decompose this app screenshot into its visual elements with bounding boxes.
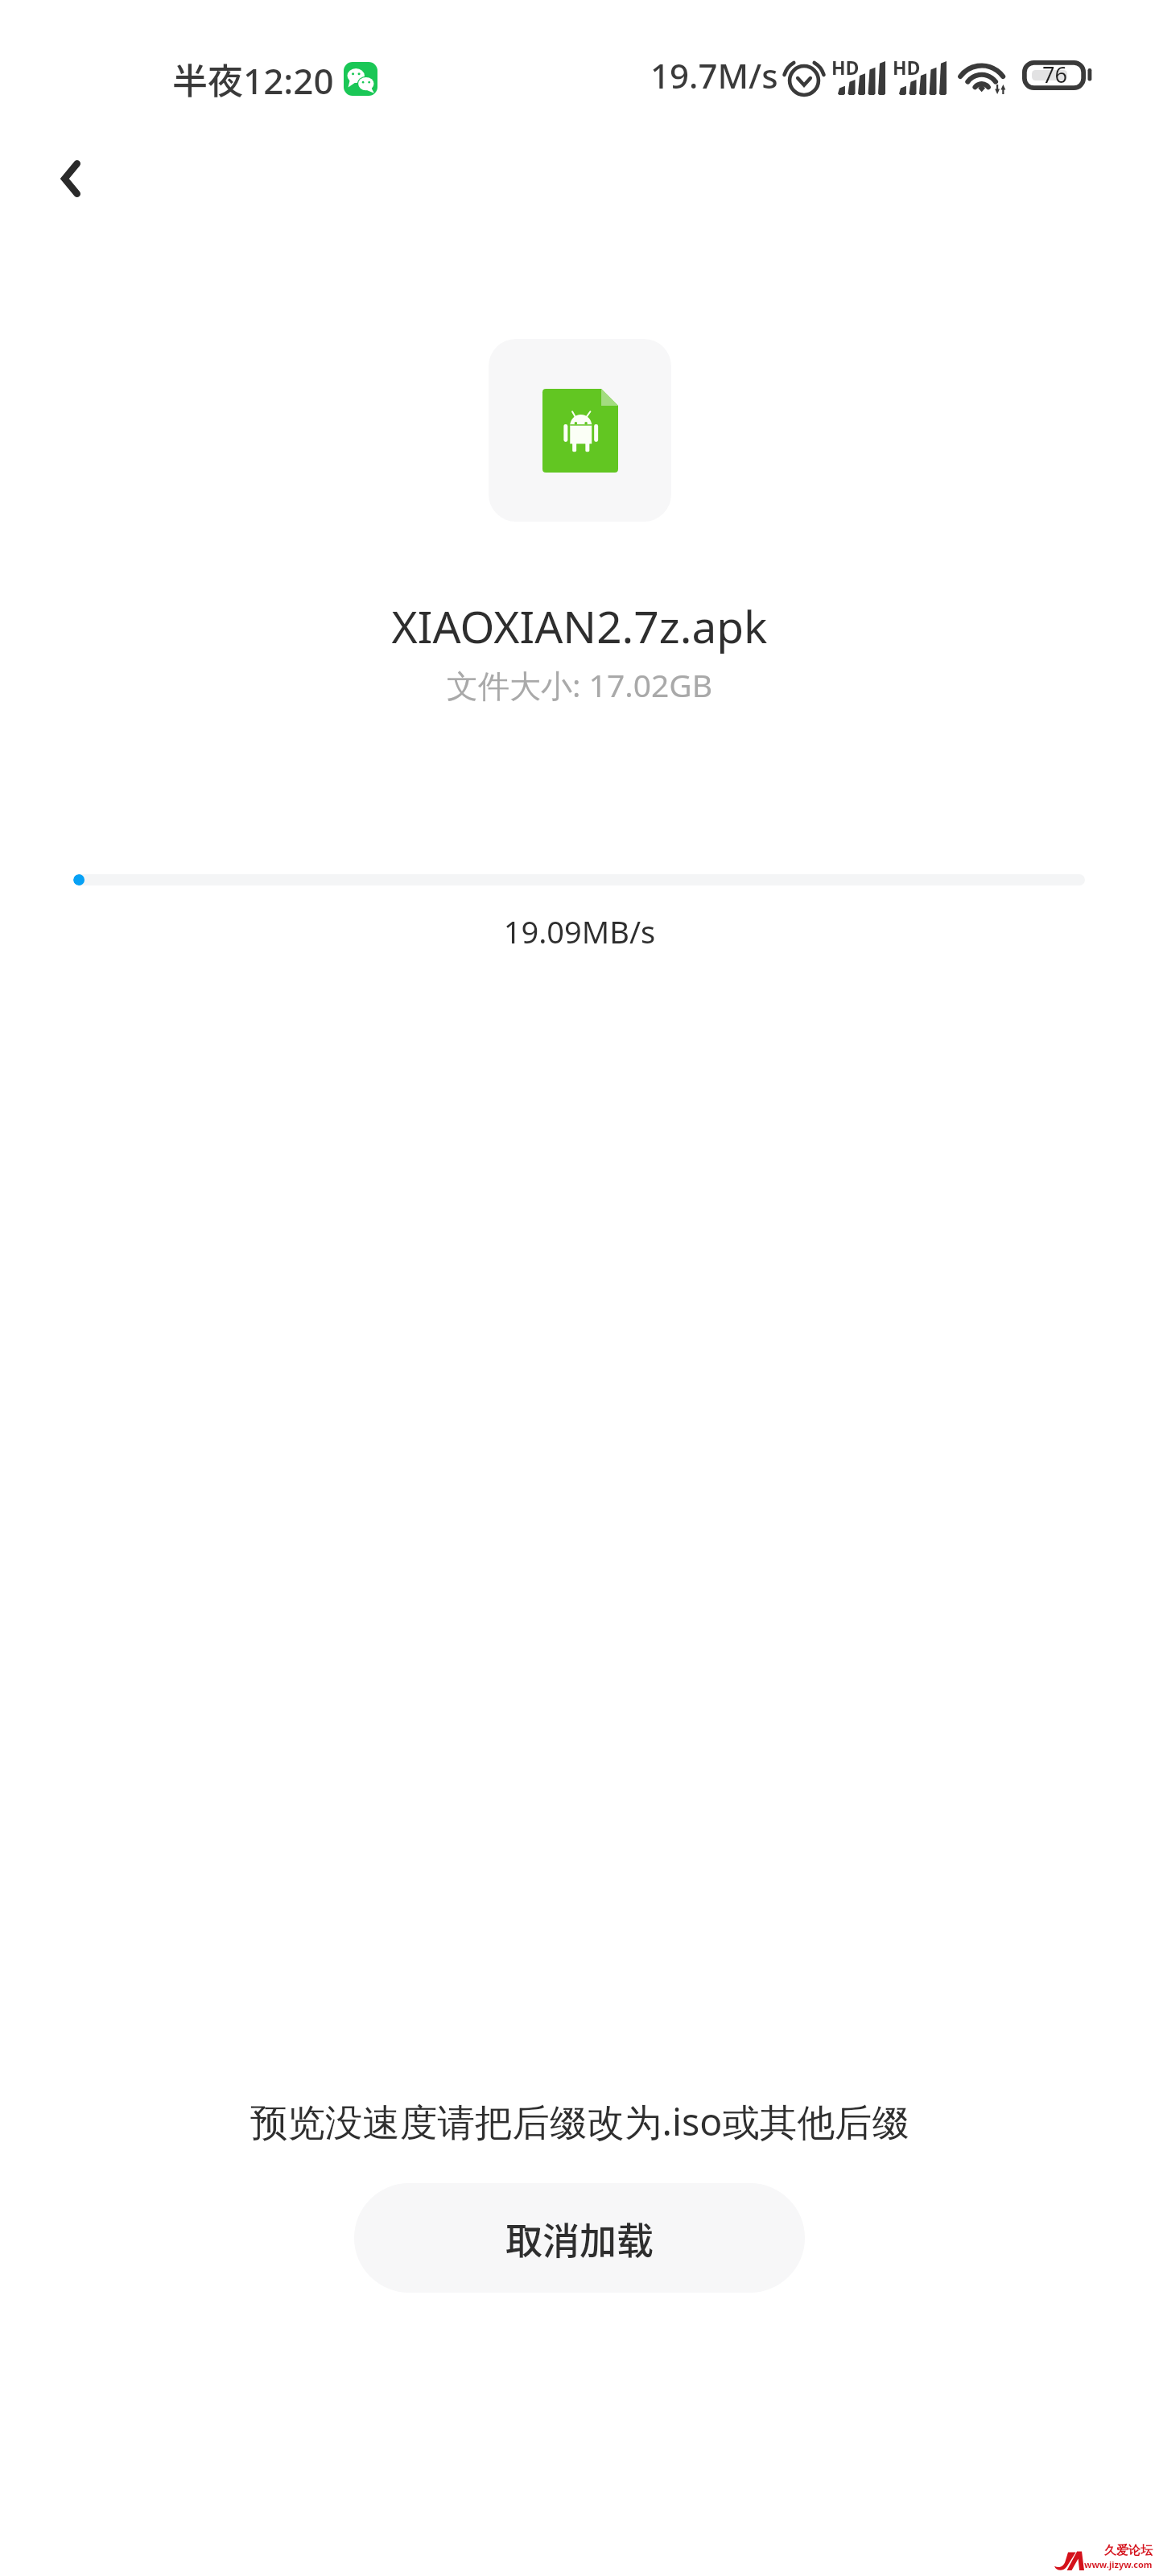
- staticText: 19.7M/s: [650, 52, 778, 98]
- staticText: 19.09MB/s: [0, 910, 1159, 952]
- button[interactable]: 取消加载: [354, 2183, 805, 2293]
- button[interactable]: Back: [32, 140, 109, 217]
- staticText: 半夜12:20: [172, 53, 334, 105]
- staticText: 取消加载: [505, 2211, 654, 2265]
- staticText: 文件大小: 17.02GB: [0, 663, 1159, 706]
- staticText: www.jizyw.com: [1084, 2558, 1153, 2570]
- staticText: 久爱论坛: [1104, 2543, 1153, 2558]
- staticText: 76: [1042, 60, 1067, 89]
- staticText: XIAOXIAN2.7z.apk: [0, 596, 1159, 656]
- staticText: HD: [831, 55, 860, 80]
- staticText: HD: [893, 55, 921, 80]
- staticText: 预览没速度请把后缀改为.iso或其他后缀: [250, 2095, 909, 2147]
